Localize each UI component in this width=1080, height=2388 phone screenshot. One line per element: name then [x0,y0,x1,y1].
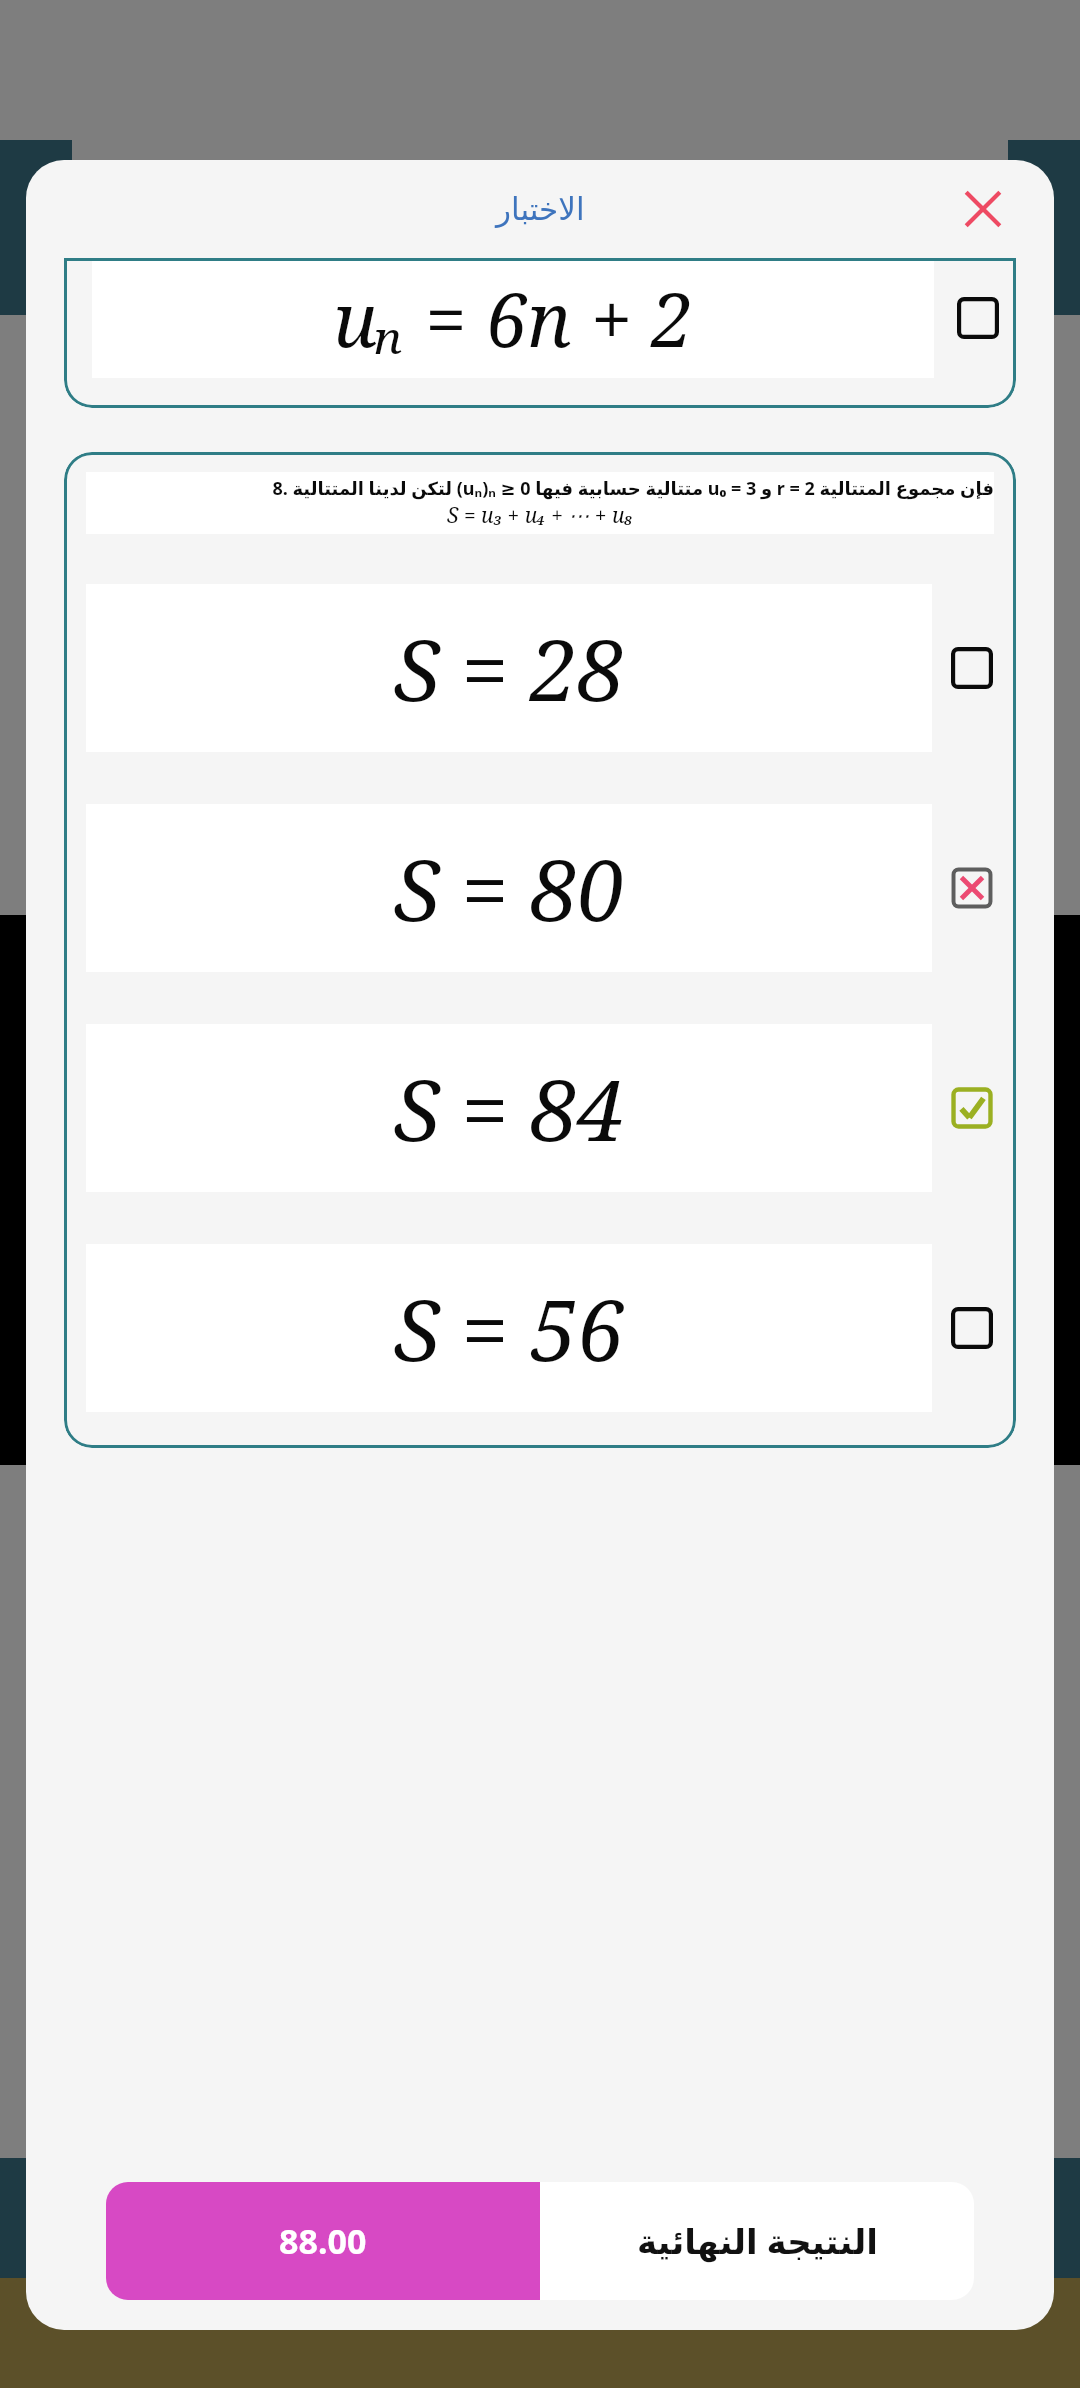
button[interactable]: إجابة خاطئة [950,866,994,910]
staticText: 88.00 [279,2218,367,2264]
staticText: S = 56 [394,1271,625,1385]
button[interactable]: إغلاق [946,172,1020,246]
button[interactable]: النتيجة النهائية [540,2182,974,2300]
button[interactable]: إجابة صحيحة [950,1086,994,1130]
staticText: S = 28 [394,611,625,725]
button[interactable]: خيار [950,1306,994,1350]
staticText: S = u₃ + u₄ + ⋯ + u₈ [86,501,994,530]
button[interactable]: uₙ = 6n + 2 [64,258,1016,408]
button[interactable]: خيار [950,646,994,690]
button[interactable]: S = 56 [86,1244,994,1412]
button[interactable]: 88.00 [106,2182,540,2300]
staticText: 8. لتكن لدينا المتتالية (uₙ)ₙ ≥ 0 متتالي… [86,476,994,501]
staticText: الاختبار [496,191,585,227]
staticText: S = 84 [394,1051,625,1165]
staticText: uₙ = 6n + 2 [333,268,693,369]
staticText: S = 80 [394,831,625,945]
button[interactable]: S = 28 [86,584,994,752]
button[interactable]: S = 80 [86,804,994,972]
staticText: النتيجة النهائية [637,2218,878,2264]
button[interactable]: خيار [956,296,1000,340]
button[interactable]: S = 84 [86,1024,994,1192]
